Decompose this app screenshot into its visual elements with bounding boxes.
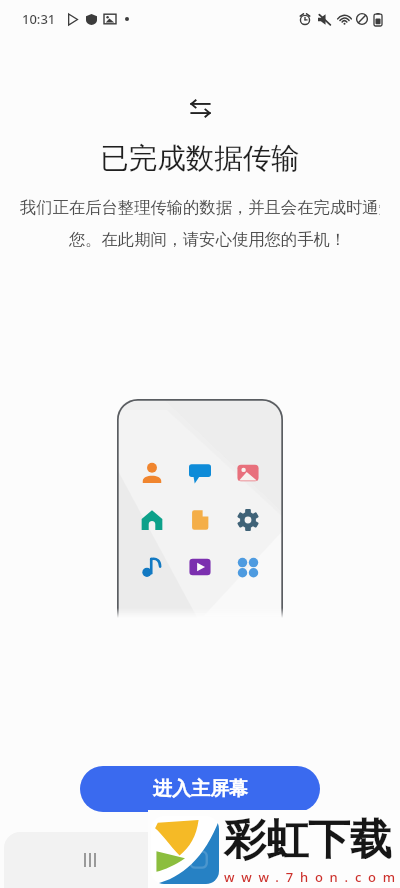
button[interactable]: Recents: [74, 843, 106, 877]
staticText: 已完成数据传输: [0, 141, 400, 177]
staticText: 我们正在后台整理传输的数据，并且会在完成时通知 您。在此期间，请安心使用您的手机…: [20, 197, 380, 250]
staticText: 彩虹下载: [224, 814, 392, 867]
staticText: 进入主屏幕: [153, 777, 248, 801]
staticText: www.7hon.com: [224, 868, 400, 886]
staticText: 10:31: [22, 10, 56, 28]
button[interactable]: 进入主屏幕: [80, 766, 320, 812]
